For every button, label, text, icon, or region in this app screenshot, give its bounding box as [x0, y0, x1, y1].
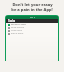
button[interactable]: Toggle task	[6, 32, 58, 35]
button[interactable]: Tasks	[5, 15, 59, 61]
button[interactable]: Toggle task	[8, 30, 10, 32]
button[interactable]: Toggle task	[8, 24, 10, 26]
button[interactable]: Toggle task	[8, 27, 10, 29]
button[interactable]: Don't let your essay	[2, 2, 62, 12]
staticText: Tasks	[8, 19, 16, 23]
button[interactable]: Toggle task	[6, 23, 58, 26]
button[interactable]: Toggle task	[8, 33, 10, 35]
staticText: Edit & proof	[11, 32, 24, 35]
staticText: Don't let your essay	[12, 2, 53, 7]
button[interactable]: Toggle task	[6, 29, 58, 32]
staticText: be a pain in the App!	[11, 7, 53, 12]
staticText: Draft outline	[11, 26, 24, 29]
button[interactable]: Toggle task	[6, 26, 58, 29]
staticText: Research topic	[11, 23, 27, 26]
staticText: Write intro	[11, 29, 22, 32]
button[interactable]: Tasks	[6, 19, 58, 23]
